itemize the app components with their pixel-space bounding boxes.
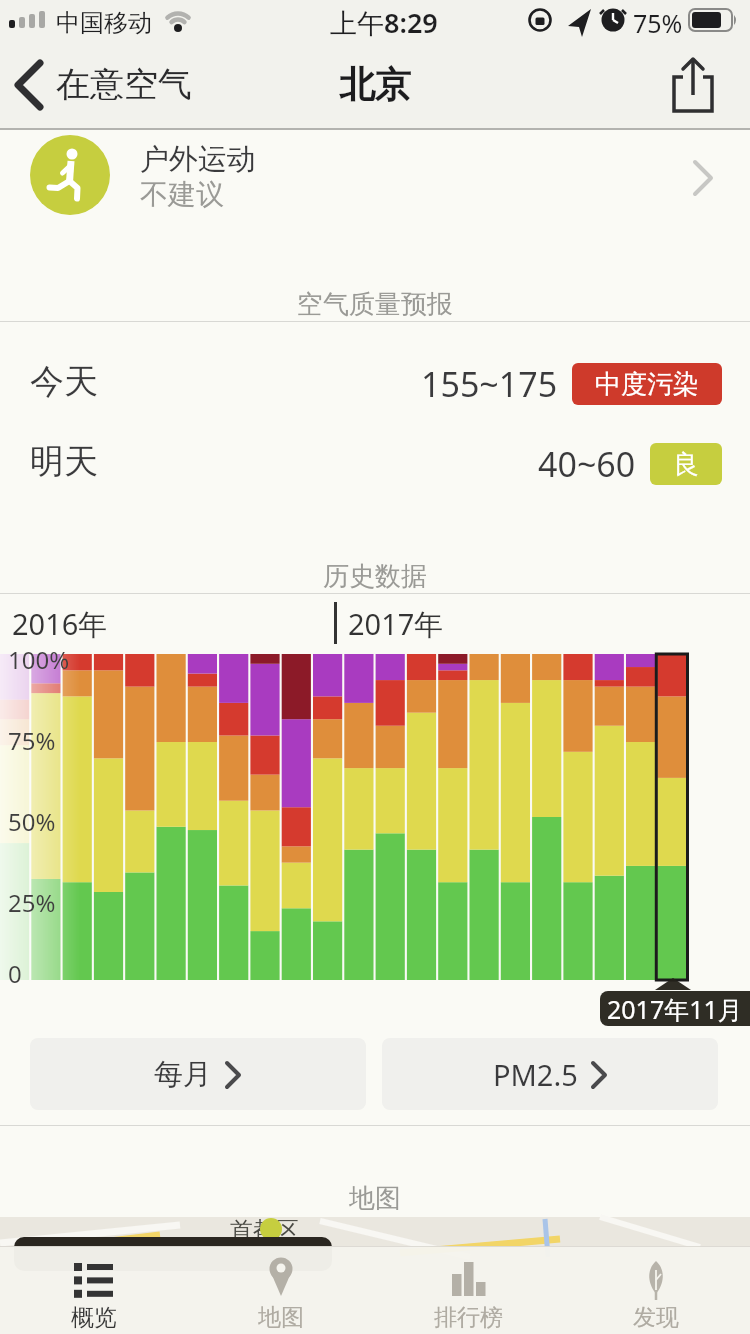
staticText: 上午8:29	[330, 4, 438, 41]
staticText: 地图	[349, 1182, 401, 1215]
button[interactable]: 明天	[0, 432, 750, 496]
staticText: 中国移动	[56, 8, 152, 38]
staticText: 在意空气	[56, 63, 192, 106]
staticText: 2017年11月	[607, 992, 743, 1026]
staticText: 75%	[633, 6, 683, 40]
staticText: 空气质量预报	[297, 288, 453, 321]
staticText: 155~175	[421, 361, 558, 407]
staticText: 明天	[30, 440, 98, 483]
button[interactable]	[666, 57, 722, 113]
button[interactable]: 地图	[187, 1246, 374, 1334]
button[interactable]: 每月	[30, 1038, 366, 1110]
staticText: 北京	[339, 62, 411, 107]
button[interactable]: 今天	[0, 352, 750, 416]
staticText: 今天	[30, 360, 98, 403]
staticText: 75%	[8, 724, 56, 757]
button[interactable]: PM2.5	[382, 1038, 718, 1110]
staticText: 中度污染	[595, 368, 699, 401]
staticText: 地图	[258, 1303, 304, 1332]
staticText: 50%	[8, 805, 56, 838]
staticText: 2016年	[12, 604, 108, 644]
staticText: 首都区	[230, 1216, 299, 1245]
staticText: PM2.5	[493, 1055, 578, 1094]
staticText: 40~60	[538, 441, 636, 487]
staticText: 每月	[154, 1056, 212, 1093]
button[interactable]: 在意空气	[12, 40, 192, 129]
button[interactable]: 概览	[0, 1246, 187, 1334]
staticText: 户外运动	[140, 141, 256, 178]
staticText: 排行榜	[434, 1303, 503, 1332]
staticText: 0	[8, 957, 22, 990]
button[interactable]: 发现	[562, 1246, 750, 1334]
staticText: 概览	[71, 1303, 117, 1332]
staticText: 25%	[8, 886, 56, 919]
staticText: 100%	[8, 643, 70, 676]
staticText: 发现	[633, 1303, 679, 1332]
staticText: 历史数据	[323, 560, 427, 593]
staticText: 良	[673, 448, 699, 481]
button[interactable]: 排行榜	[374, 1246, 562, 1334]
button[interactable]: 户外运动	[0, 133, 750, 217]
staticText: 2017年	[348, 604, 444, 644]
staticText: 不建议	[140, 177, 224, 212]
